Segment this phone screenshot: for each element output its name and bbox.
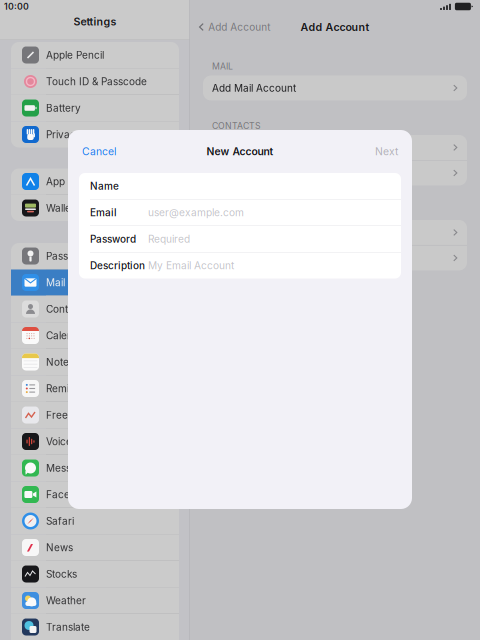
staticText: iCloud	[212, 141, 241, 153]
staticText: Password	[90, 233, 136, 245]
staticText: 10:00	[4, 1, 29, 12]
staticText: Contacts	[46, 303, 88, 315]
button[interactable]: Freeform	[11, 402, 179, 428]
button[interactable]: Add Account	[203, 245, 467, 270]
button[interactable]: Mail	[11, 269, 179, 295]
button[interactable]: Add Mail Account	[203, 75, 467, 100]
button[interactable]: Add Account	[190, 16, 270, 38]
staticText: Safari	[46, 515, 74, 527]
staticText: Privacy & Security	[46, 128, 133, 141]
button[interactable]: Wallet	[11, 195, 179, 221]
button[interactable]: Voice Memos	[11, 428, 179, 454]
staticText: Battery	[46, 102, 81, 114]
staticText: Add Account	[212, 167, 274, 179]
button[interactable]: FaceTime	[11, 481, 179, 507]
staticText: Calendar	[46, 329, 89, 342]
staticText: Next	[375, 145, 398, 158]
staticText: New Account	[206, 145, 273, 158]
staticText: Voice Memos	[46, 435, 110, 448]
button[interactable]: Next	[361, 136, 412, 167]
button[interactable]: Privacy & Security	[11, 121, 179, 147]
button[interactable]: News	[11, 534, 179, 560]
staticText: Wallet	[46, 202, 74, 214]
staticText: Apple Pencil	[46, 49, 104, 61]
staticText: Reminders	[46, 382, 96, 395]
staticText: user@example.com	[148, 206, 244, 219]
staticText: Add Account	[208, 21, 270, 33]
button[interactable]: Cancel	[68, 136, 131, 167]
staticText: FaceTime	[46, 488, 92, 501]
staticText: Passwords	[46, 250, 97, 262]
button[interactable]: Weather	[11, 587, 179, 613]
button[interactable]: Stocks	[11, 561, 179, 587]
staticText: Email	[90, 206, 117, 219]
staticText: Required	[148, 233, 190, 245]
staticText: Messages	[46, 462, 94, 474]
button[interactable]: Battery	[11, 95, 179, 121]
button[interactable]: Notes	[11, 349, 179, 375]
staticText: Stocks	[46, 568, 77, 580]
button[interactable]: Passwords	[11, 243, 179, 269]
staticText: Name	[90, 180, 119, 192]
button[interactable]: Translate	[11, 614, 179, 640]
staticText: Add Account	[212, 252, 274, 264]
staticText: News	[46, 541, 73, 554]
staticText: App Store	[46, 175, 93, 188]
staticText: Add Account	[300, 20, 369, 33]
button[interactable]: Reminders	[11, 375, 179, 401]
button[interactable]: iCloud	[203, 220, 467, 245]
button[interactable]: App Store	[11, 168, 179, 194]
staticText: Add Mail Account	[212, 82, 296, 94]
staticText: Freeform	[46, 409, 90, 421]
staticText: Touch ID & Passcode	[46, 75, 147, 88]
button[interactable]: Safari	[11, 508, 179, 534]
staticText: Cancel	[82, 145, 117, 158]
staticText: Weather	[46, 594, 86, 607]
staticText: Settings	[73, 15, 116, 28]
staticText: My Email Account	[148, 259, 234, 272]
staticText: Translate	[46, 621, 90, 633]
button[interactable]: Touch ID & Passcode	[11, 68, 179, 94]
staticText: Mail	[46, 276, 65, 289]
button[interactable]: Apple Pencil	[11, 42, 179, 68]
staticText: Notes	[46, 356, 74, 368]
staticText: CONTACTS	[212, 120, 261, 131]
button[interactable]: Contacts	[11, 296, 179, 322]
button[interactable]: Add Account	[203, 160, 467, 185]
staticText: CALENDARS	[212, 205, 265, 216]
staticText: MAIL	[212, 61, 233, 71]
button[interactable]: Calendar	[11, 322, 179, 348]
button[interactable]: Messages	[11, 455, 179, 481]
staticText: Description	[90, 259, 145, 272]
button[interactable]: iCloud	[203, 135, 467, 160]
